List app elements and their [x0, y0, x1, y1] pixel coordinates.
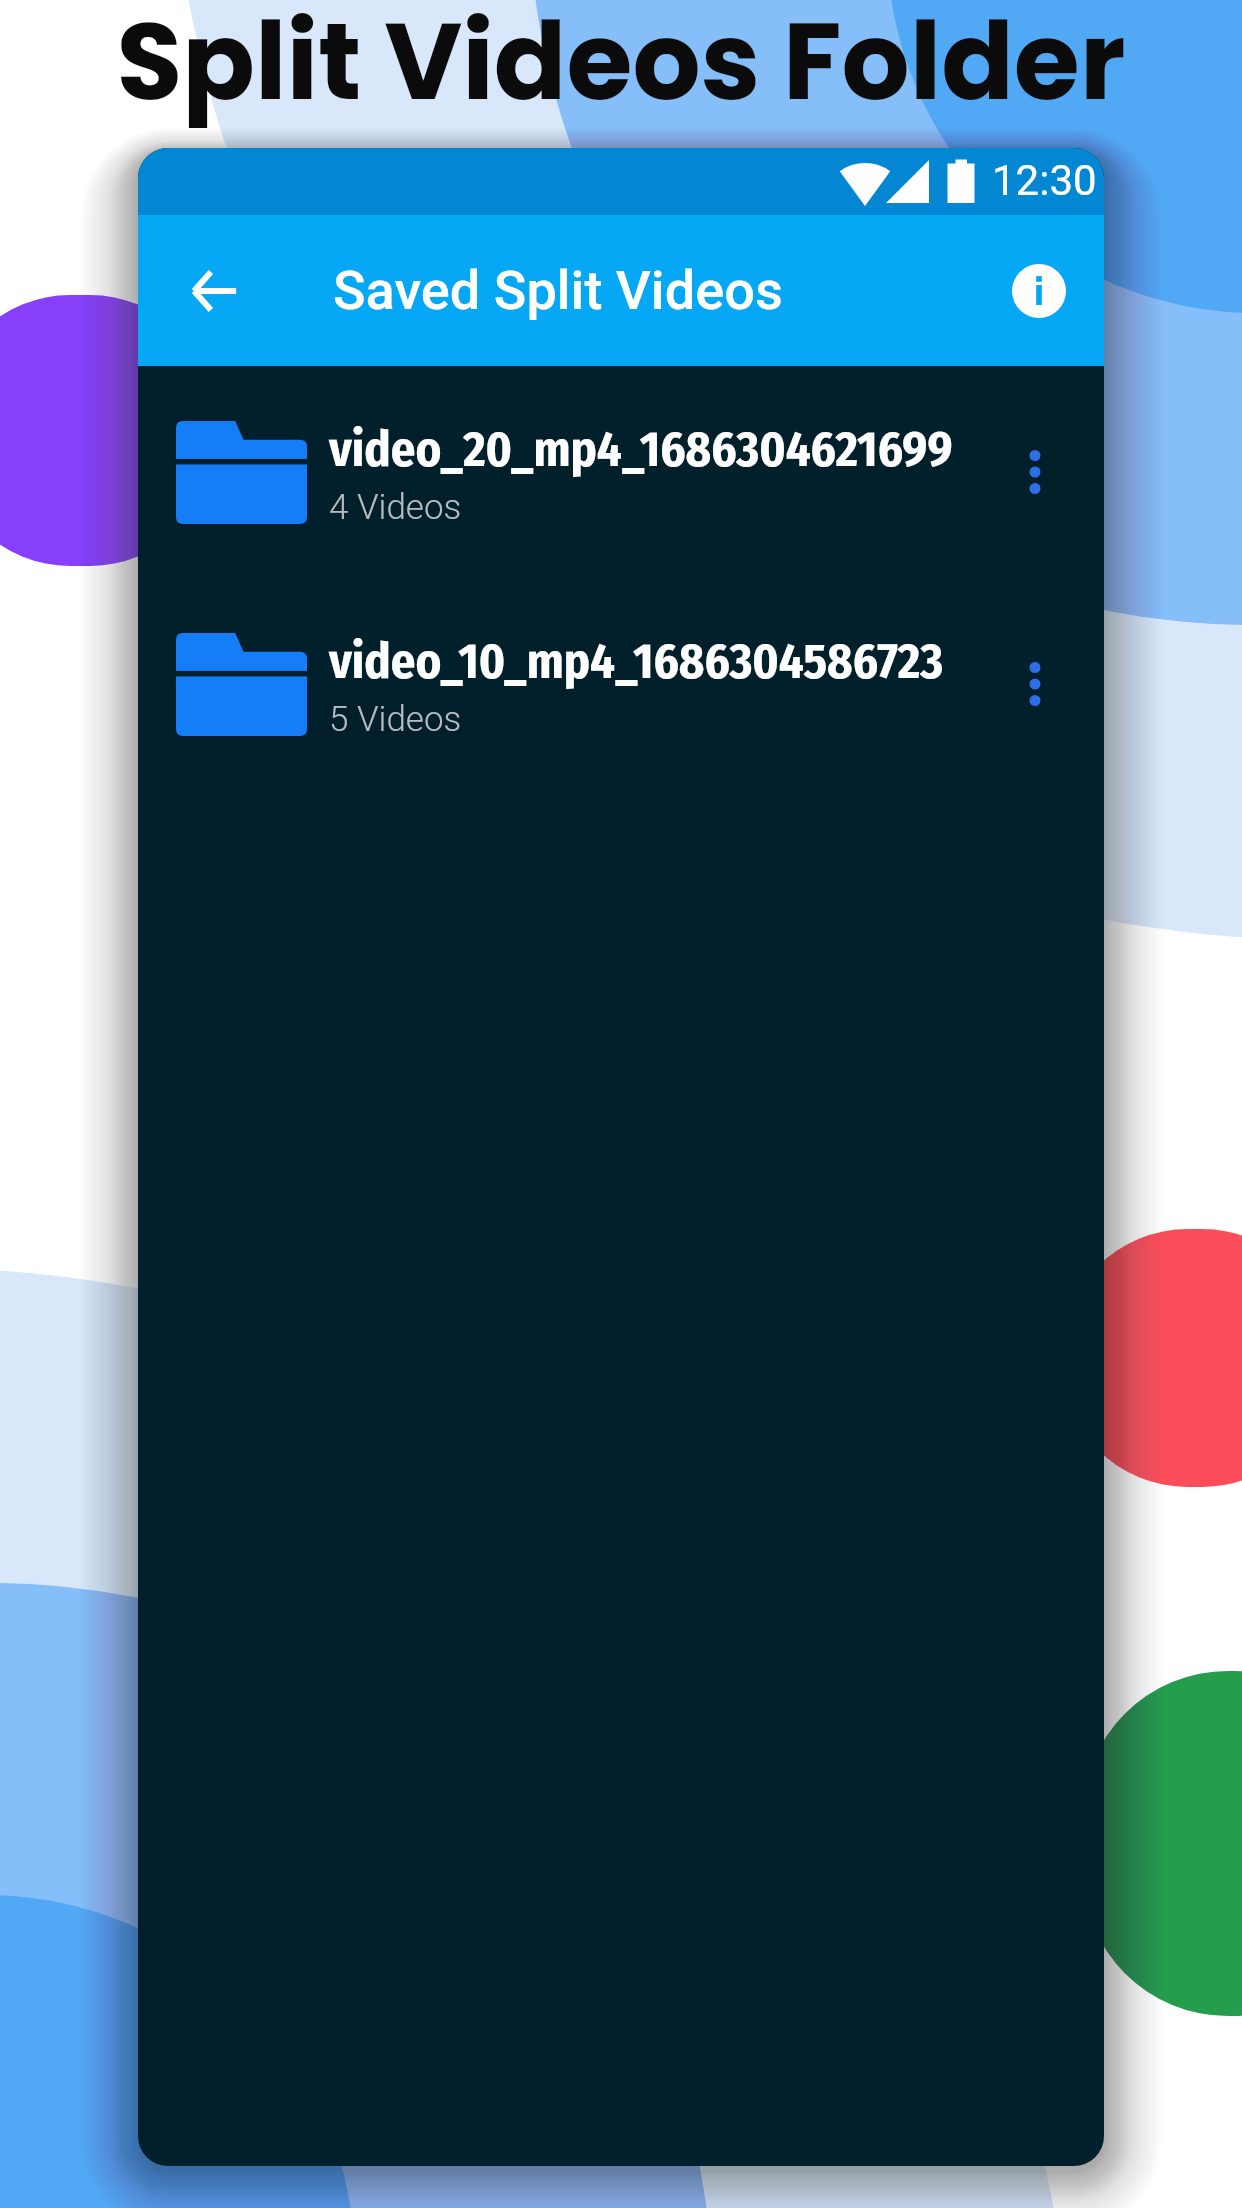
staticText: Split Videos Folder [116, 0, 1126, 137]
button[interactable]: More options [965, 609, 1104, 759]
button[interactable]: Info [1012, 264, 1066, 318]
button[interactable]: Back [192, 266, 237, 316]
staticText: Saved Split Videos [333, 259, 783, 322]
button[interactable]: More options [965, 397, 1104, 547]
staticText: video_20_mp4_1686304621699 [329, 421, 953, 479]
staticText: video_10_mp4_1686304586723 [329, 633, 944, 691]
staticText: 4 Videos [329, 487, 462, 528]
staticText: 12:30 [992, 156, 1097, 205]
button[interactable]: video_10_mp4_1686304586723 [138, 609, 1104, 759]
staticText: 5 Videos [329, 699, 462, 740]
button[interactable]: video_20_mp4_1686304621699 [138, 397, 1104, 547]
